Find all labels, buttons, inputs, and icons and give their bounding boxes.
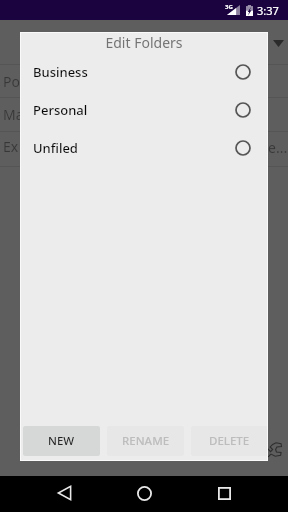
staticText: Ma: [3, 105, 24, 124]
button[interactable]: RENAME: [107, 426, 184, 456]
button[interactable]: DELETE: [191, 426, 268, 456]
staticText: 3:37: [257, 3, 279, 18]
button[interactable]: Business: [20, 53, 268, 91]
staticText: NEW: [48, 433, 75, 449]
staticText: DELETE: [209, 433, 250, 449]
button[interactable]: NEW: [23, 426, 100, 456]
staticText: 3G: [225, 3, 233, 11]
staticText: Personal: [33, 101, 88, 119]
button[interactable]: Personal: [20, 91, 268, 129]
staticText: Unfiled: [33, 139, 78, 157]
button[interactable]: Unfiled: [20, 129, 268, 167]
button[interactable]: Home: [125, 474, 163, 512]
staticText: Business: [33, 63, 88, 81]
staticText: Ex: [3, 137, 19, 156]
button[interactable]: Back: [45, 474, 83, 512]
staticText: Edit Folders: [105, 33, 183, 49]
staticText: Po: [3, 72, 20, 91]
button[interactable]: Recents: [205, 474, 243, 512]
staticText: e...: [268, 138, 288, 157]
staticText: RENAME: [122, 433, 170, 449]
